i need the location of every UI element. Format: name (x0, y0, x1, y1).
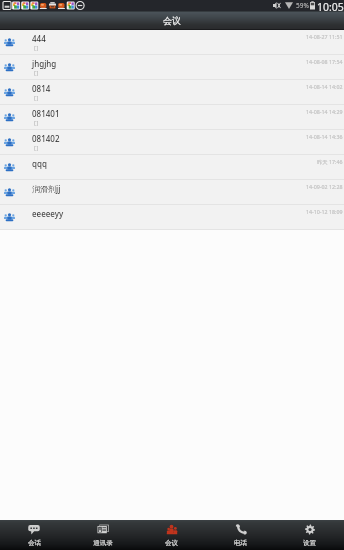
staticText: 14-08-14 14:02 (306, 83, 343, 90)
staticText: 081401 (32, 108, 60, 119)
staticText: 会议 (165, 539, 178, 547)
staticText: 59% (296, 1, 309, 10)
button[interactable]: 444 (0, 30, 344, 55)
staticText: 14-08-08 17:54 (306, 58, 343, 65)
staticText: 14-08-14 14:36 (306, 133, 343, 140)
staticText: 14-09-02 12:28 (306, 183, 343, 190)
staticText: 通讯录 (93, 539, 113, 547)
button[interactable]: 会话 (0, 520, 68, 550)
staticText: 14-08-27 11:51 (306, 33, 343, 40)
staticText: [] (34, 94, 40, 102)
staticText: 10:05 (317, 0, 344, 11)
staticText: 电话 (234, 539, 247, 547)
button[interactable]: eeeeeyy (0, 205, 344, 230)
button[interactable]: 电话 (206, 520, 275, 550)
staticText: 14-10-12 18:09 (306, 208, 343, 215)
button[interactable]: 会议 (137, 520, 206, 550)
staticText: [] (34, 144, 40, 152)
staticText: 会话 (28, 539, 41, 547)
button[interactable]: 0814 (0, 80, 344, 105)
button[interactable]: 081401 (0, 105, 344, 130)
staticText: 会议 (163, 15, 181, 26)
button[interactable]: 081402 (0, 130, 344, 155)
staticText: [] (34, 44, 40, 52)
staticText: [] (34, 69, 40, 77)
staticText: qqq (32, 158, 47, 169)
staticText: 设置 (303, 539, 316, 547)
staticText: 昨天 17:46 (317, 158, 343, 165)
staticText: jhgjhg (32, 58, 57, 69)
button[interactable]: 设置 (275, 520, 344, 550)
button[interactable]: jhgjhg (0, 55, 344, 80)
button[interactable]: 润滑剂jj (0, 180, 344, 205)
staticText: eeeeeyy (32, 208, 64, 219)
staticText: 444 (32, 33, 46, 44)
staticText: 081402 (32, 133, 60, 144)
staticText: 14-08-14 14:29 (306, 108, 343, 115)
button[interactable]: qqq (0, 155, 344, 180)
staticText: 0814 (32, 83, 51, 94)
staticText: 润滑剂jj (32, 183, 61, 194)
button[interactable]: 通讯录 (68, 520, 137, 550)
staticText: [] (34, 119, 40, 127)
